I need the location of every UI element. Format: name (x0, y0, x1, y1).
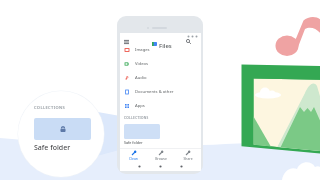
button[interactable]: Browse (147, 149, 174, 162)
button[interactable]: Share (174, 149, 201, 162)
button[interactable]: Clean (120, 149, 147, 162)
button[interactable]: Documents & other (120, 85, 201, 99)
staticText: Documents & other (135, 89, 174, 95)
button[interactable]: Search (184, 37, 193, 46)
staticText: Clean (129, 156, 138, 161)
button[interactable]: Videos (120, 57, 201, 71)
button[interactable]: Safe folder (34, 118, 91, 140)
staticText: Safe folder (124, 140, 143, 145)
staticText: Videos (135, 61, 149, 67)
staticText: Safe folder (34, 143, 71, 153)
button[interactable]: Images (120, 43, 201, 57)
staticText: Share (183, 156, 193, 161)
staticText: COLLECTIONS (34, 105, 66, 110)
staticText: Images (135, 47, 150, 53)
staticText: Browse (155, 156, 167, 161)
button[interactable]: Menu (122, 37, 131, 46)
button[interactable]: Apps (120, 99, 201, 113)
staticText: Audio (135, 75, 147, 81)
staticText: Apps (135, 103, 145, 109)
button[interactable]: Audio (120, 71, 201, 85)
staticText: Files (159, 42, 172, 50)
staticText: COLLECTIONS (124, 116, 149, 120)
other: Safe folder (59, 125, 67, 133)
